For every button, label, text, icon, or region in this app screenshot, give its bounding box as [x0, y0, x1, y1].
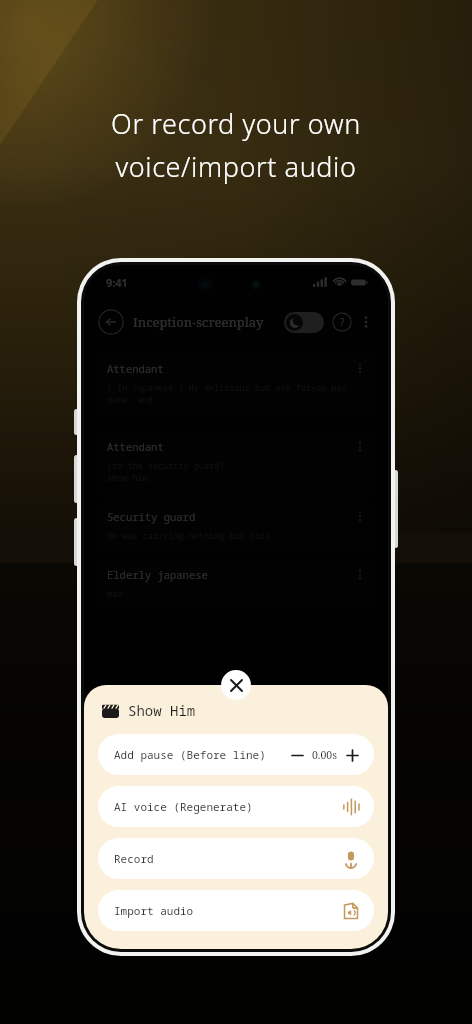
staticText: Add pause (Before line) — [114, 747, 266, 762]
staticText: AI voice (Regenerate) — [114, 799, 253, 814]
staticText: 9:41 — [106, 275, 128, 290]
button[interactable]: Record — [98, 838, 374, 879]
button[interactable]: Decrease pause — [289, 747, 305, 763]
button[interactable]: Back — [98, 309, 124, 335]
staticText: He was carrying nothing but this — [107, 530, 271, 542]
button[interactable]: Attendant — [96, 431, 376, 493]
staticText: 0.00s — [312, 748, 337, 762]
button[interactable]: Close — [221, 670, 251, 700]
button[interactable]: Import audio — [98, 890, 374, 931]
staticText: Attendant — [107, 362, 164, 376]
staticText: Inception-screenplay — [133, 313, 264, 331]
staticText: Record — [114, 851, 154, 866]
staticText: Import audio — [114, 903, 194, 918]
staticText: Or record your own — [111, 105, 361, 142]
button[interactable]: Attendant — [96, 353, 376, 415]
staticText: Attendant — [107, 440, 164, 454]
staticText: voice/import audio — [115, 148, 357, 185]
button[interactable]: Help — [332, 312, 352, 332]
staticText: Show Him — [128, 701, 196, 720]
button[interactable]: Elderly japanese — [96, 559, 376, 609]
button[interactable]: Security guard — [96, 501, 376, 551]
staticText: ? — [340, 315, 345, 329]
staticText: man — [107, 588, 123, 600]
button[interactable]: Increase pause — [344, 747, 360, 763]
staticText: Elderly japanese — [107, 568, 208, 582]
staticText: (to the security guard) show him. — [107, 460, 225, 484]
button[interactable]: Toggle dark mode — [284, 312, 324, 333]
button[interactable]: More options — [358, 311, 374, 333]
staticText: Security guard — [107, 510, 196, 524]
button[interactable]: AI voice (Regenerate) — [98, 786, 374, 827]
button[interactable]: Add pause (Before line) — [98, 734, 374, 775]
